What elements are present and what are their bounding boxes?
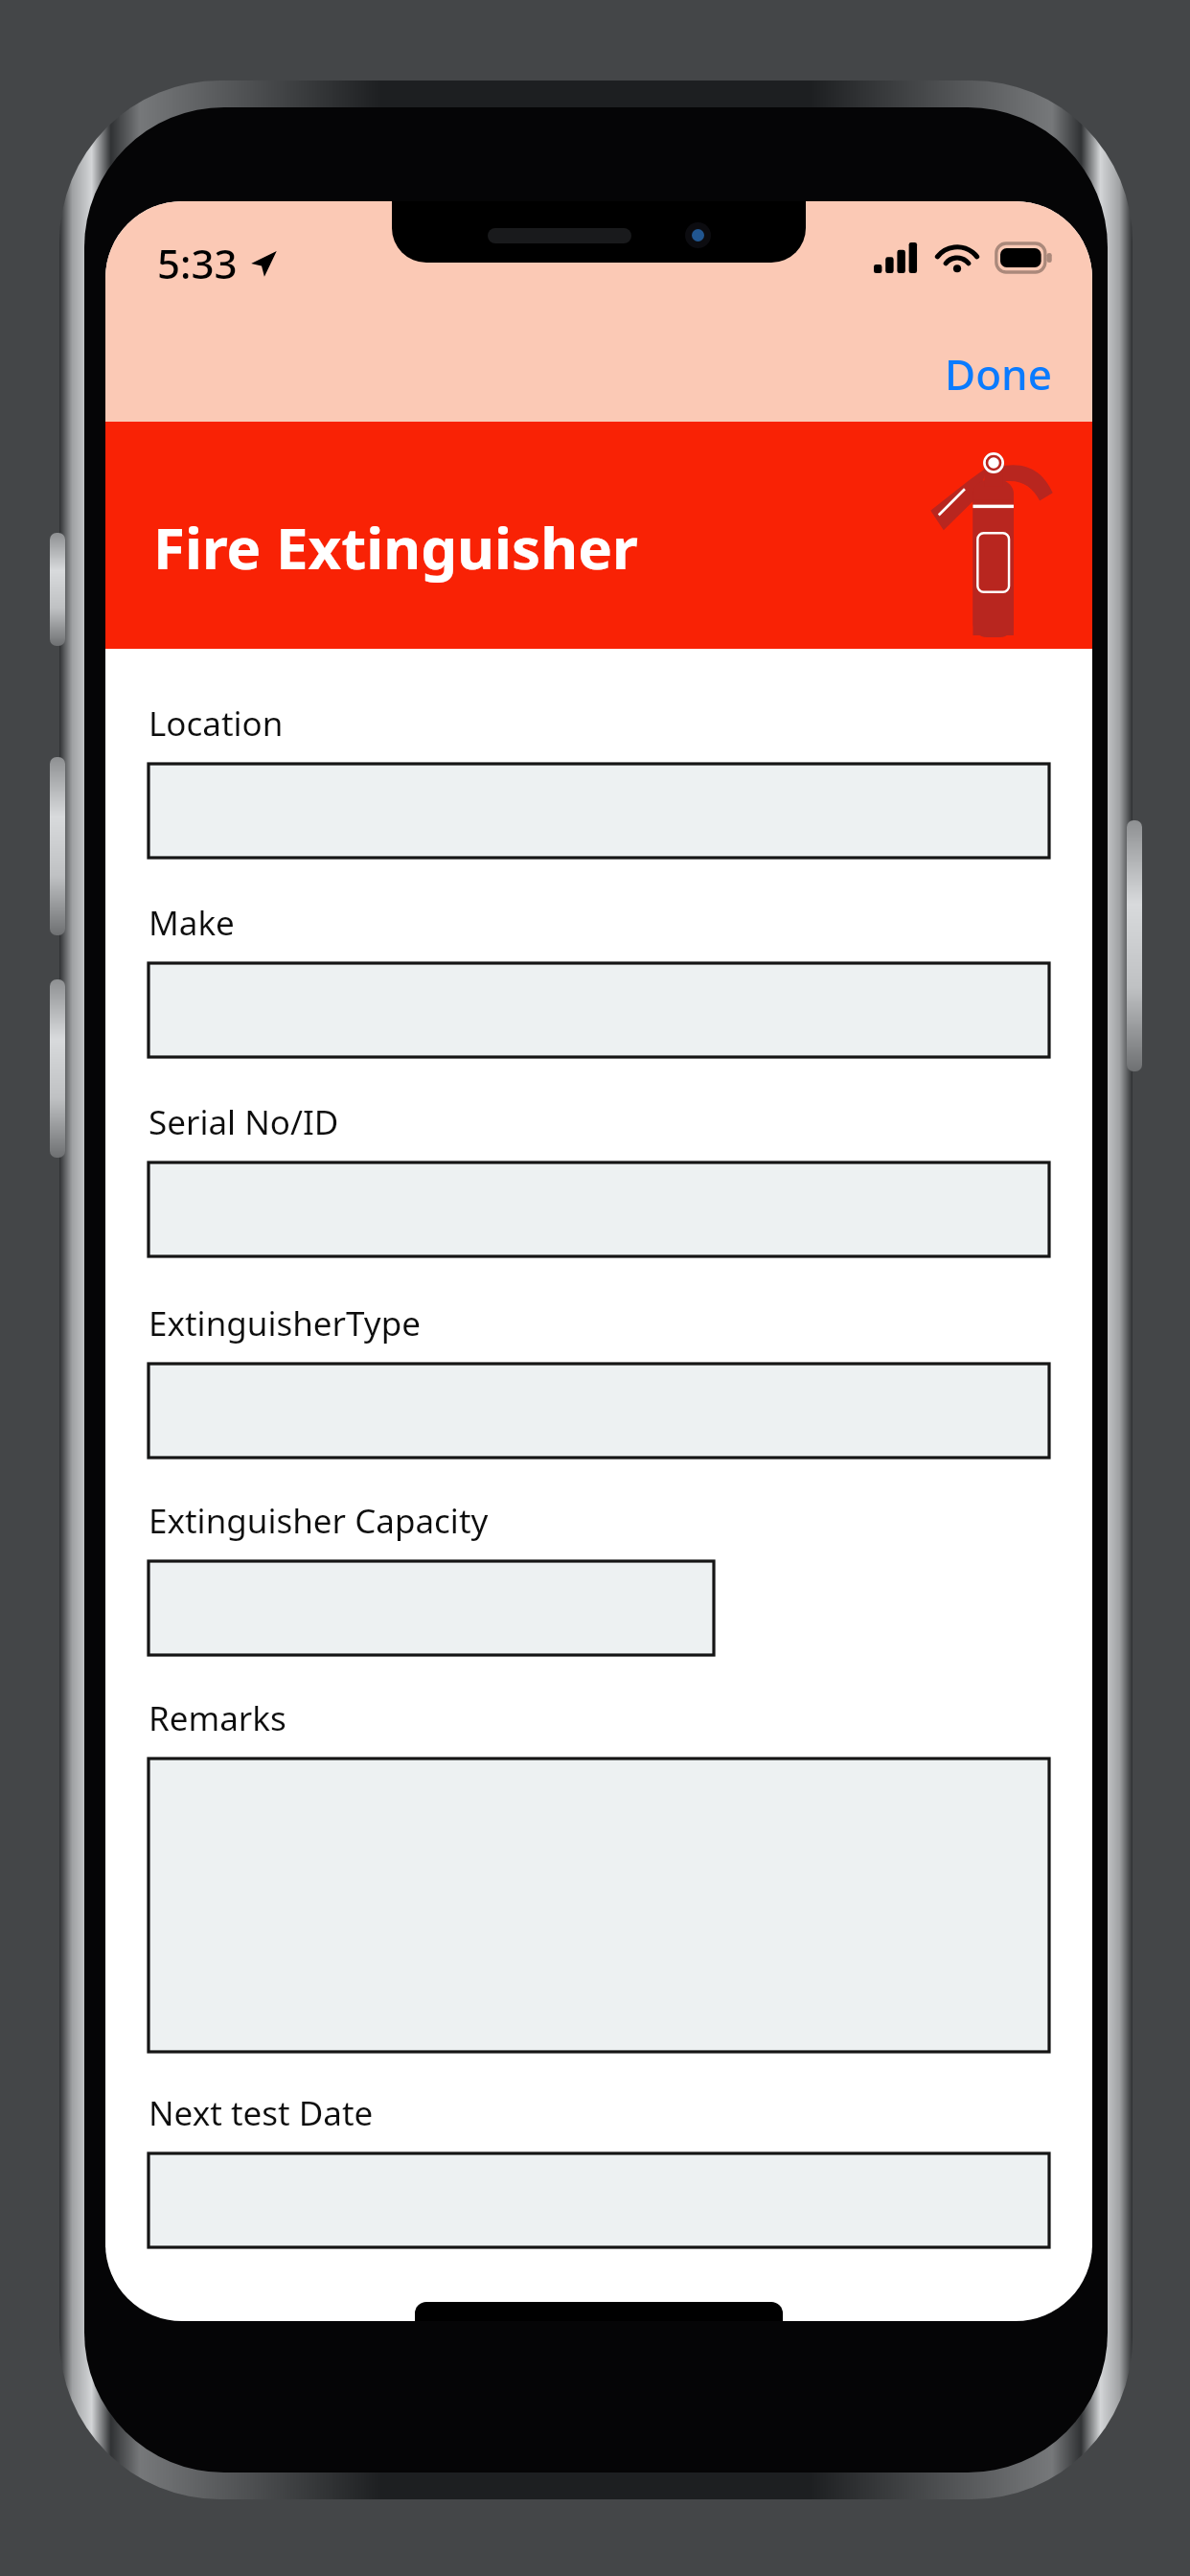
button[interactable] <box>149 963 1049 1057</box>
staticText: Serial No/ID <box>149 1099 339 1145</box>
staticText: Fire Extinguisher <box>153 508 638 586</box>
button[interactable] <box>149 1364 1049 1458</box>
button[interactable] <box>149 1759 1049 2052</box>
staticText: Make <box>149 900 235 946</box>
button[interactable] <box>149 764 1049 858</box>
other: Fire extinguisher <box>910 441 1073 637</box>
button[interactable]: Done <box>926 333 1071 414</box>
staticText: 5:33 <box>157 236 238 290</box>
staticText: Next test Date <box>149 2090 374 2136</box>
button[interactable] <box>149 1162 1049 1256</box>
staticText: Remarks <box>149 1695 286 1741</box>
staticText: Location <box>149 701 284 747</box>
button[interactable] <box>149 1561 714 1655</box>
staticText: ExtinguisherType <box>149 1300 421 1346</box>
staticText: Extinguisher Capacity <box>149 1498 489 1544</box>
button[interactable] <box>149 2153 1049 2247</box>
staticText: Done <box>945 345 1052 402</box>
